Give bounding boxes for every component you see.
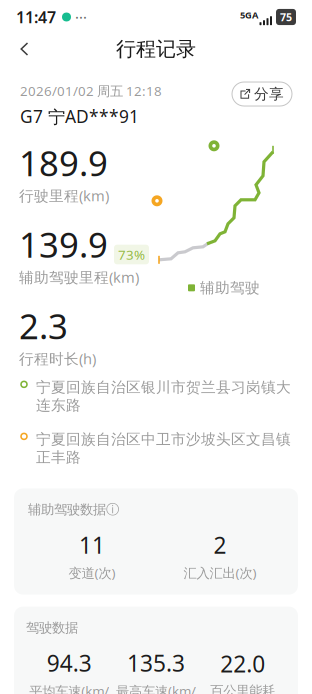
staticText: ··· [75, 7, 87, 27]
staticText: 22.0 [220, 649, 265, 679]
staticText: 5GA [240, 9, 258, 21]
staticText: 2 [213, 530, 226, 560]
staticText: 变道(次) [68, 564, 115, 582]
staticText: 最高车速(km/h) [116, 682, 196, 694]
button[interactable]: Back [10, 37, 39, 61]
staticText: 行程时长(h) [19, 349, 96, 368]
staticText: 139.9 [19, 221, 108, 267]
staticText: 11 [79, 530, 105, 560]
staticText: G7 宁AD***91 [20, 105, 139, 128]
staticText: 94.3 [47, 648, 92, 678]
staticText: 2.3 [19, 303, 68, 349]
staticText: 73% [118, 246, 145, 263]
staticText: 75 [280, 10, 292, 24]
staticText: 行程记录 [116, 37, 196, 61]
staticText: 驾驶数据 [26, 620, 78, 636]
staticText: 辅助驾驶数据ⓘ [28, 501, 119, 518]
staticText: 汇入汇出(次) [183, 564, 256, 582]
staticText: 百公里能耗(kWh) [210, 683, 275, 694]
staticText: 辅助驾驶 [200, 279, 260, 297]
staticText: 行驶里程(km) [19, 186, 109, 205]
staticText: 宁夏回族自治区中卫市沙坡头区文昌镇正丰路 [36, 430, 291, 466]
staticText: 11:47 [16, 6, 56, 28]
staticText: 2026/01/02 周五 12:18 [20, 82, 162, 100]
button[interactable]: 分享 [232, 82, 292, 106]
staticText: 辅助驾驶里程(km) [19, 267, 139, 287]
staticText: 分享 [254, 85, 284, 103]
staticText: 135.3 [127, 648, 185, 678]
staticText: 平均车速(km/h) [29, 682, 109, 694]
staticText: 189.9 [19, 140, 108, 186]
staticText: 宁夏回族自治区银川市贺兰县习岗镇大连东路 [36, 378, 291, 414]
